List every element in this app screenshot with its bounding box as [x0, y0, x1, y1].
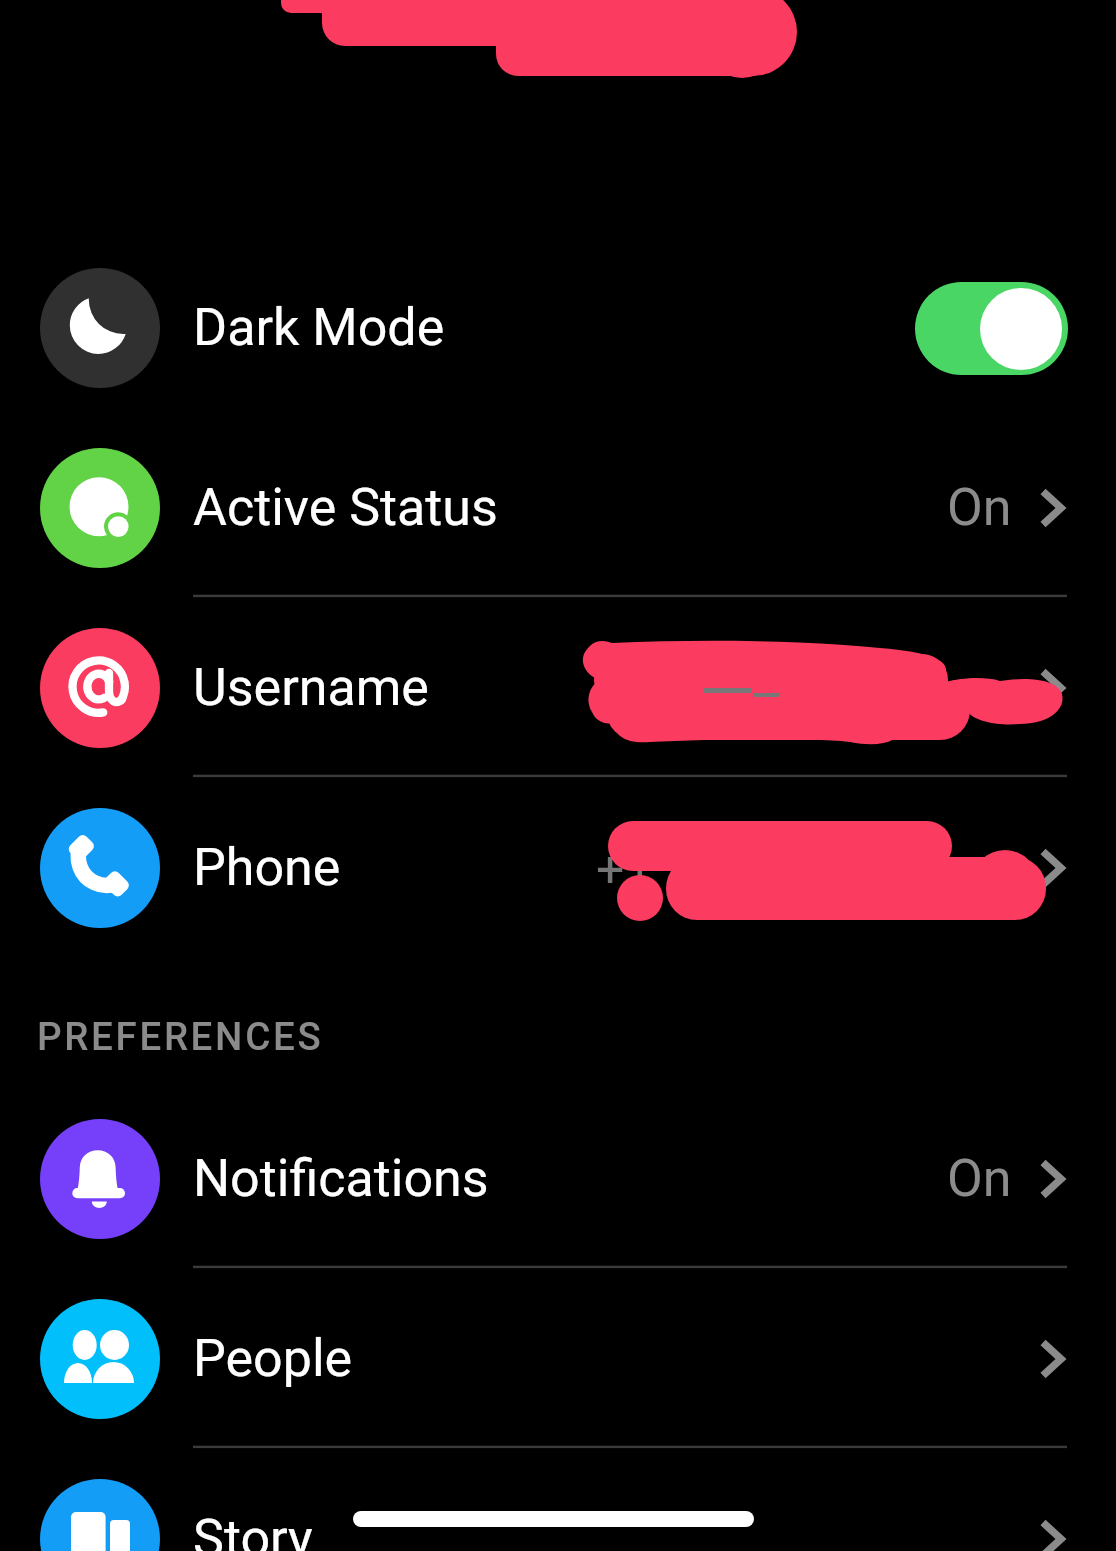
staticText: Phone: [193, 837, 341, 898]
staticText: +1 555 0100: [596, 841, 874, 900]
button[interactable]: Dark Mode toggle, on: [915, 282, 1068, 375]
staticText: On: [947, 1148, 1012, 1209]
button[interactable]: Active Status: [0, 418, 1116, 598]
button[interactable]: Phone: [0, 778, 1116, 958]
staticText: On: [947, 477, 1012, 538]
staticText: PREFERENCES: [37, 1014, 324, 1059]
staticText: Dark Mode: [193, 297, 445, 358]
staticText: Story: [193, 1508, 313, 1551]
button[interactable]: Dark Mode: [0, 238, 1116, 418]
button[interactable]: Story: [0, 1449, 1116, 1551]
staticText: Username: [193, 657, 429, 718]
staticText: Active Status: [193, 477, 498, 538]
button[interactable]: Username: [0, 598, 1116, 778]
button[interactable]: People: [0, 1269, 1116, 1449]
staticText: Notifications: [193, 1148, 489, 1209]
button[interactable]: Notifications: [0, 1089, 1116, 1269]
staticText: People: [193, 1328, 353, 1389]
